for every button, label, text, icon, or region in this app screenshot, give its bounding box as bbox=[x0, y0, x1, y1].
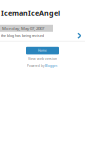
staticText: Blogger. bbox=[45, 64, 58, 68]
staticText: IcemanIceAngel bbox=[1, 8, 60, 18]
staticText: Powered by bbox=[27, 64, 44, 68]
staticText: Home bbox=[38, 49, 47, 53]
button[interactable]: Home bbox=[26, 47, 59, 54]
button[interactable]: the blog has being revised bbox=[0, 32, 85, 40]
button[interactable]: Blogger. bbox=[45, 64, 58, 68]
staticText: Monday, May 07, 2007 bbox=[2, 25, 44, 31]
button[interactable]: View web version bbox=[28, 56, 57, 61]
staticText: the blog has being revised bbox=[1, 33, 44, 38]
staticText: View web version bbox=[28, 56, 57, 61]
